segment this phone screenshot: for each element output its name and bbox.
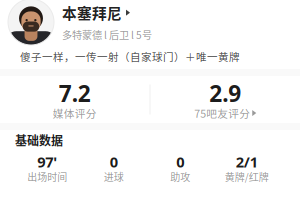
- staticText: 多特蒙德 l 后卫 l 5号: [62, 27, 152, 42]
- staticText: 基础数据: [15, 131, 63, 149]
- staticText: 2.9: [209, 78, 241, 108]
- staticText: 出场时间: [27, 169, 67, 184]
- staticText: 媒体评分: [53, 105, 97, 121]
- staticText: 傻子一样，一传一射（自家球门）＋唯一黄牌: [20, 49, 240, 64]
- button[interactable]: 本塞拜尼: [0, 0, 300, 44]
- button[interactable]: 2.9: [150, 78, 300, 121]
- staticText: 97': [37, 152, 57, 171]
- staticText: 2/1: [236, 152, 258, 171]
- staticText: 75吧友评分: [194, 105, 250, 121]
- staticText: 本塞拜尼: [62, 2, 122, 23]
- staticText: 0: [176, 152, 184, 171]
- staticText: 助攻: [170, 169, 190, 184]
- staticText: 黄牌/红牌: [225, 169, 269, 184]
- staticText: 进球: [104, 169, 124, 184]
- staticText: 7.2: [59, 78, 91, 108]
- staticText: 0: [110, 152, 118, 171]
